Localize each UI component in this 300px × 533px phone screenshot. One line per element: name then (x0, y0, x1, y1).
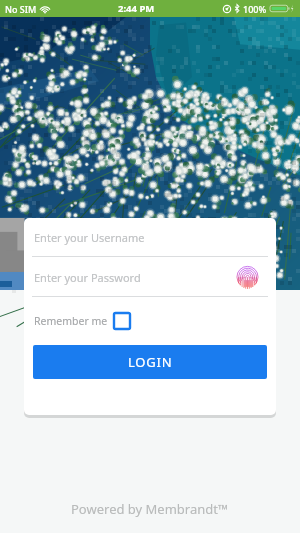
staticText: No SIM (5, 3, 37, 15)
staticText: LOGIN (128, 353, 173, 371)
button[interactable]: Enter your Username (24, 218, 276, 256)
staticText: Remember me (34, 314, 108, 328)
staticText: Enter your Password (34, 270, 141, 285)
staticText: Enter your Username (34, 230, 145, 245)
button[interactable]: LOGIN (33, 345, 267, 379)
button[interactable]: Remember me (32, 308, 132, 334)
staticText: Powered by Membrandt™ (71, 500, 229, 518)
staticText: 2:44 PM (118, 2, 155, 15)
button[interactable]: Remember me checkbox (113, 312, 131, 330)
button[interactable]: Enter your Password (24, 258, 276, 296)
button[interactable]: Fingerprint login (235, 265, 260, 290)
staticText: 100% (243, 3, 267, 15)
